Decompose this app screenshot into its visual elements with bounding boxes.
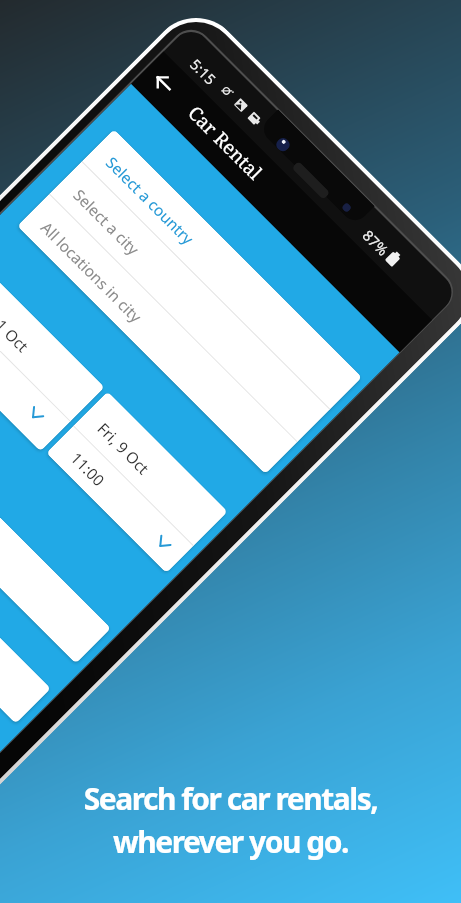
staticText: Select a country [102,152,199,249]
button[interactable]: Select a country [81,129,362,410]
button[interactable] [0,440,51,724]
staticText: Search for car rentals, [0,778,461,819]
staticText: 5:15 [186,54,221,89]
staticText: Select a city [69,184,144,259]
button[interactable]: Navigate back [144,64,183,102]
button[interactable]: Thu, 1 Oct [0,263,105,452]
button[interactable]: Select a city [49,162,330,442]
button[interactable] [0,380,111,664]
staticText: Thu, 1 Oct [0,289,33,356]
button[interactable]: All locations in city [17,194,297,474]
button[interactable]: Fri, 9 Oct [46,391,228,573]
staticText: 11:00 [67,447,110,490]
staticText: Car Rental [183,100,268,186]
staticText: 87% [359,225,393,260]
staticText: wherever you go. [0,821,461,862]
staticText: Fri, 9 Oct [93,418,154,478]
staticText: All locations in city [37,217,146,326]
